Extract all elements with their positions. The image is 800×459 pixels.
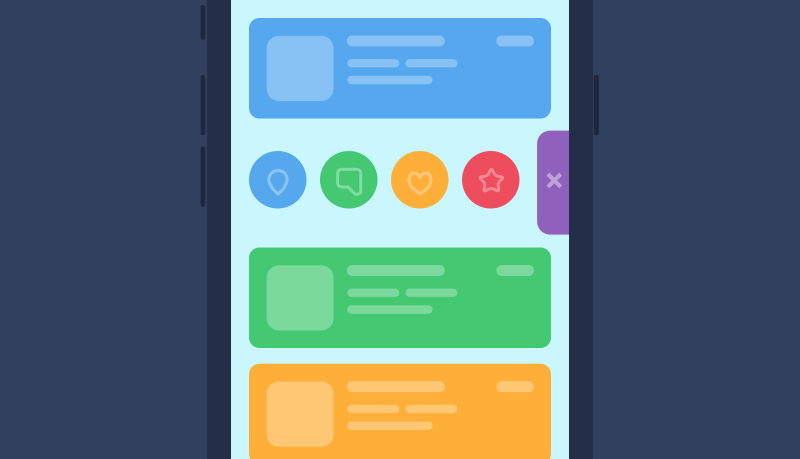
button[interactable]: Favourite [462, 151, 519, 208]
button[interactable]: Location [249, 151, 306, 208]
button[interactable]: Like [391, 151, 448, 208]
button[interactable]: Comment [320, 151, 377, 208]
button[interactable]: Dismiss [537, 131, 603, 235]
